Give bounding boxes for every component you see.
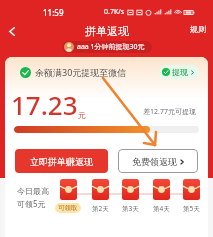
button[interactable]: Red packet	[183, 179, 200, 200]
staticText: 提现	[172, 67, 188, 77]
button[interactable]: 免费领返现	[118, 149, 198, 173]
staticText: aaa 1分钟前提现30元	[77, 42, 145, 52]
staticText: 0.7K/s	[104, 7, 125, 17]
button[interactable]: Back	[2, 21, 22, 41]
staticText: 元	[78, 110, 86, 120]
button[interactable]: 立即拼单赚返现	[15, 149, 108, 173]
button[interactable]: 规则	[190, 24, 213, 34]
staticText: 可领取	[58, 204, 78, 212]
button[interactable]: 提现	[159, 65, 199, 79]
staticText: 立即拼单赚返现	[30, 156, 93, 167]
button[interactable]: Red packet	[153, 179, 170, 200]
staticText: 可领5元	[17, 198, 46, 209]
staticText: 第4天	[153, 204, 170, 213]
staticText: 第3天	[122, 204, 139, 213]
staticText: 17.23	[11, 87, 78, 122]
staticText: 差12.77元可提现	[143, 107, 196, 117]
staticText: 拼单返现	[85, 24, 129, 38]
button[interactable]: Red packet	[122, 179, 139, 200]
button[interactable]: Red packet	[92, 179, 109, 200]
staticText: 第5天	[183, 204, 200, 213]
staticText: 今日最高	[17, 186, 49, 196]
button[interactable]: Red packet	[60, 179, 77, 200]
staticText: 余额满30元提现至微信	[35, 66, 127, 78]
staticText: 11:59	[43, 7, 64, 18]
staticText: 第2天	[92, 204, 109, 213]
staticText: 免费领返现	[132, 156, 177, 167]
